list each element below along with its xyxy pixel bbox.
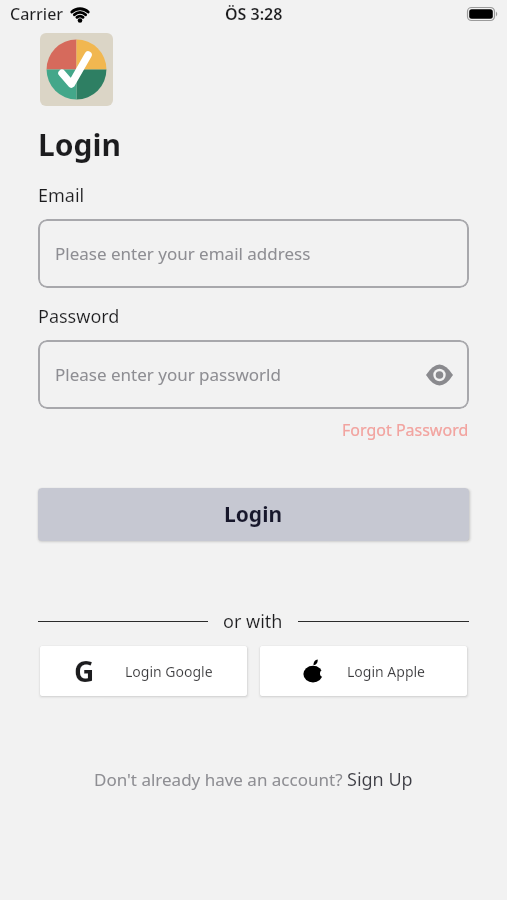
button[interactable]: G [40,646,247,696]
button[interactable]: Please enter your email address [38,219,469,288]
staticText: Please enter your email address [55,242,311,265]
button[interactable]: Forgot Password [342,419,469,441]
staticText: Sign Up [347,767,413,792]
staticText: Login Google [125,662,213,681]
staticText: Carrier [10,3,64,25]
staticText: Login Apple [347,662,425,681]
staticText: Don't already have an account? [94,768,347,791]
staticText: Please enter your passworld [55,363,281,386]
staticText: Email [38,183,85,208]
staticText: or with [223,609,283,634]
staticText: Login [224,500,283,529]
staticText: G [74,652,95,690]
staticText: Login [38,124,121,165]
staticText: ÖS 3:28 [225,3,283,25]
button[interactable]: Login Apple [260,646,467,696]
staticText: Password [38,304,120,329]
button[interactable]: Don't already have an account? [0,767,507,792]
button[interactable]: Please enter your passworld [38,340,469,409]
button[interactable]: Login [38,488,469,541]
